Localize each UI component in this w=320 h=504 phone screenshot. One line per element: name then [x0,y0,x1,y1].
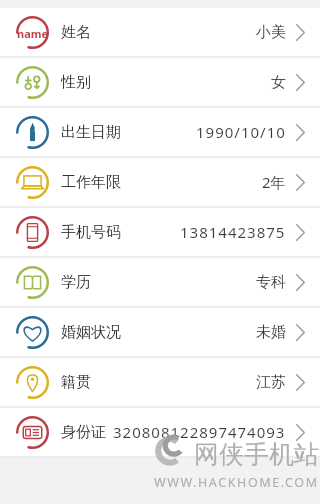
staticText: 未婚 [256,323,286,342]
button[interactable]: 工作年限 [0,158,320,208]
button[interactable]: 性别 [0,58,320,108]
staticText: 学历 [61,273,91,292]
button[interactable]: name [0,8,320,58]
button[interactable]: 出生日期 [0,108,320,158]
button[interactable]: 身份证 [0,408,320,458]
staticText: 出生日期 [61,123,121,142]
staticText: 专科 [256,273,286,292]
staticText: 女 [271,73,286,92]
staticText: 身份证 [61,423,106,442]
button[interactable]: 学历 [0,258,320,308]
staticText: 1990/10/10 [196,122,286,142]
button[interactable]: 婚姻状况 [0,308,320,358]
button[interactable]: 籍贯 [0,358,320,408]
staticText: 13814423875 [180,222,286,242]
staticText: 姓名 [61,23,91,42]
staticText: 江苏 [256,373,286,392]
staticText: 2年 [262,172,286,192]
staticText: 320808122897474093 [113,422,286,442]
staticText: 籍贯 [61,373,91,392]
staticText: 工作年限 [61,173,121,192]
staticText: 婚姻状况 [61,323,121,342]
button[interactable]: 手机号码 [0,208,320,258]
staticText: 性别 [61,73,91,92]
staticText: WWW.HACKHOME.COM [154,474,319,491]
staticText: name [17,26,49,41]
staticText: 网侠手机站 [194,439,319,470]
staticText: 手机号码 [61,223,121,242]
staticText: 小美 [256,23,286,42]
